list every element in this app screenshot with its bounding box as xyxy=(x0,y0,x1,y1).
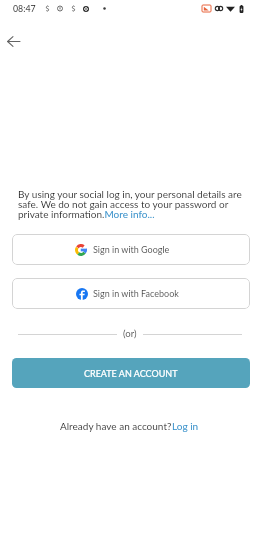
staticText: CREATE AN ACCOUNT xyxy=(84,368,178,379)
button[interactable]: Back xyxy=(0,28,26,54)
button[interactable]: Sign in with Facebook xyxy=(12,278,250,309)
staticText: Already have an account? xyxy=(60,420,174,432)
staticText: (or) xyxy=(123,328,137,340)
staticText: By using your social log in, your person… xyxy=(18,188,242,220)
staticText: Sign in with Facebook xyxy=(93,288,179,299)
button[interactable]: Sign in with Google xyxy=(12,234,250,265)
staticText: Sign in with Google xyxy=(93,244,170,255)
staticText: 08:47 xyxy=(13,3,36,14)
staticText: Log in xyxy=(172,420,199,432)
button[interactable]: CREATE AN ACCOUNT xyxy=(12,358,250,388)
button[interactable]: Log in xyxy=(174,420,201,432)
